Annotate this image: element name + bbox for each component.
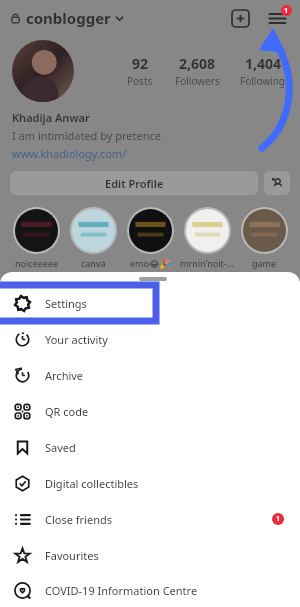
button[interactable]: game [236, 207, 293, 269]
staticText: 1,404 [245, 54, 282, 73]
button[interactable]: 92 [127, 54, 153, 88]
button[interactable]: Close friends [0, 501, 300, 537]
button[interactable]: Digital collectibles [0, 465, 300, 501]
button[interactable]: Favourites [0, 537, 300, 573]
staticText: Archive [45, 368, 84, 383]
staticText: 92 [132, 54, 149, 73]
staticText: www.khadiology.com/ [12, 146, 127, 161]
staticText: Digital collectibles [45, 476, 139, 491]
staticText: Edit Profile [105, 176, 164, 191]
button[interactable]: mrnin'noit-w-… [179, 207, 236, 269]
button[interactable]: New post [228, 6, 252, 30]
button[interactable]: Saved [0, 429, 300, 465]
button[interactable]: 2,608 [175, 54, 220, 88]
staticText: 2,608 [179, 54, 216, 73]
staticText: Settings [45, 296, 87, 311]
staticText: Your activity [45, 332, 108, 347]
button[interactable]: canva [65, 207, 122, 269]
button[interactable]: Archive [0, 357, 300, 393]
staticText: Posts [127, 74, 153, 88]
button[interactable]: noiceeeee [8, 207, 65, 269]
button[interactable]: Discover people [264, 171, 290, 195]
staticText: Following [240, 74, 286, 88]
staticText: Khadija Anwar [12, 110, 90, 125]
staticText: Close friends [45, 512, 112, 527]
button[interactable]: emo😂🎉 [122, 207, 179, 269]
staticText: noiceeeee [15, 257, 59, 269]
staticText: conblogger [26, 8, 111, 28]
button[interactable]: conblogger [10, 8, 124, 28]
staticText: emo😂🎉 [130, 257, 171, 269]
staticText: 1 [284, 6, 289, 16]
button[interactable]: QR code [0, 393, 300, 429]
staticText: game [252, 257, 277, 269]
button[interactable]: COVID-19 Information Centre [0, 573, 300, 607]
button[interactable]: 1,404 [240, 54, 286, 88]
button[interactable]: Edit Profile [10, 171, 258, 195]
button[interactable]: Your activity [0, 321, 300, 357]
staticText: COVID-19 Information Centre [45, 583, 198, 598]
staticText: canva [81, 257, 106, 269]
button[interactable]: Settings [0, 285, 300, 321]
staticText: QR code [45, 404, 89, 419]
staticText: Followers [175, 74, 220, 88]
staticText: mrnin'noit-w-… [180, 257, 235, 269]
staticText: Favourites [45, 548, 99, 563]
staticText: Saved [45, 440, 76, 455]
button[interactable]: Menu [264, 5, 290, 31]
staticText: I am intimidated by pretence [12, 128, 161, 143]
button[interactable] [12, 40, 74, 102]
staticText: 1 [276, 514, 281, 524]
